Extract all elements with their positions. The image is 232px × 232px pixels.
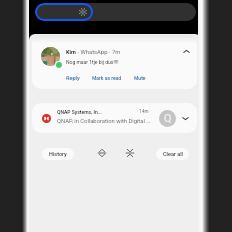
button[interactable]: Collapse notification [179, 44, 194, 59]
button[interactable]: QNAP Systems, In... [32, 103, 197, 133]
staticText: Kim [66, 49, 76, 56]
staticText: · WhatsApp · 7m [76, 49, 121, 56]
button[interactable]: Brightness [35, 3, 196, 21]
staticText: Nog maar 1tje bij dus!!!! [66, 59, 176, 65]
button[interactable]: Reply [66, 75, 80, 81]
button[interactable]: Expand all notifications [95, 146, 109, 160]
staticText: Mute [134, 75, 146, 81]
staticText: QNAP, in Collaboration with Digital O... [57, 118, 152, 125]
staticText: Clear all [163, 151, 183, 157]
button[interactable]: Mute [134, 75, 146, 81]
staticText: History [49, 151, 67, 157]
button[interactable]: Clear all [156, 148, 189, 160]
staticText: Reply [66, 75, 80, 81]
staticText: Mark as read [92, 75, 122, 81]
button[interactable]: Mark as read [92, 75, 122, 81]
staticText: · 14m [137, 109, 149, 114]
button[interactable]: Kim [32, 35, 197, 89]
button[interactable]: Q [159, 110, 176, 127]
button[interactable]: History [42, 148, 74, 160]
button[interactable]: Expand notification [178, 111, 193, 126]
button[interactable]: Collapse all notifications [123, 146, 137, 160]
staticText: QNAP Systems, In... [57, 109, 102, 115]
staticText: Q [164, 112, 172, 125]
